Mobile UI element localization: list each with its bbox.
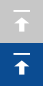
- button[interactable]: Export: [0, 0, 43, 43]
- button[interactable]: Export: [0, 43, 43, 86]
